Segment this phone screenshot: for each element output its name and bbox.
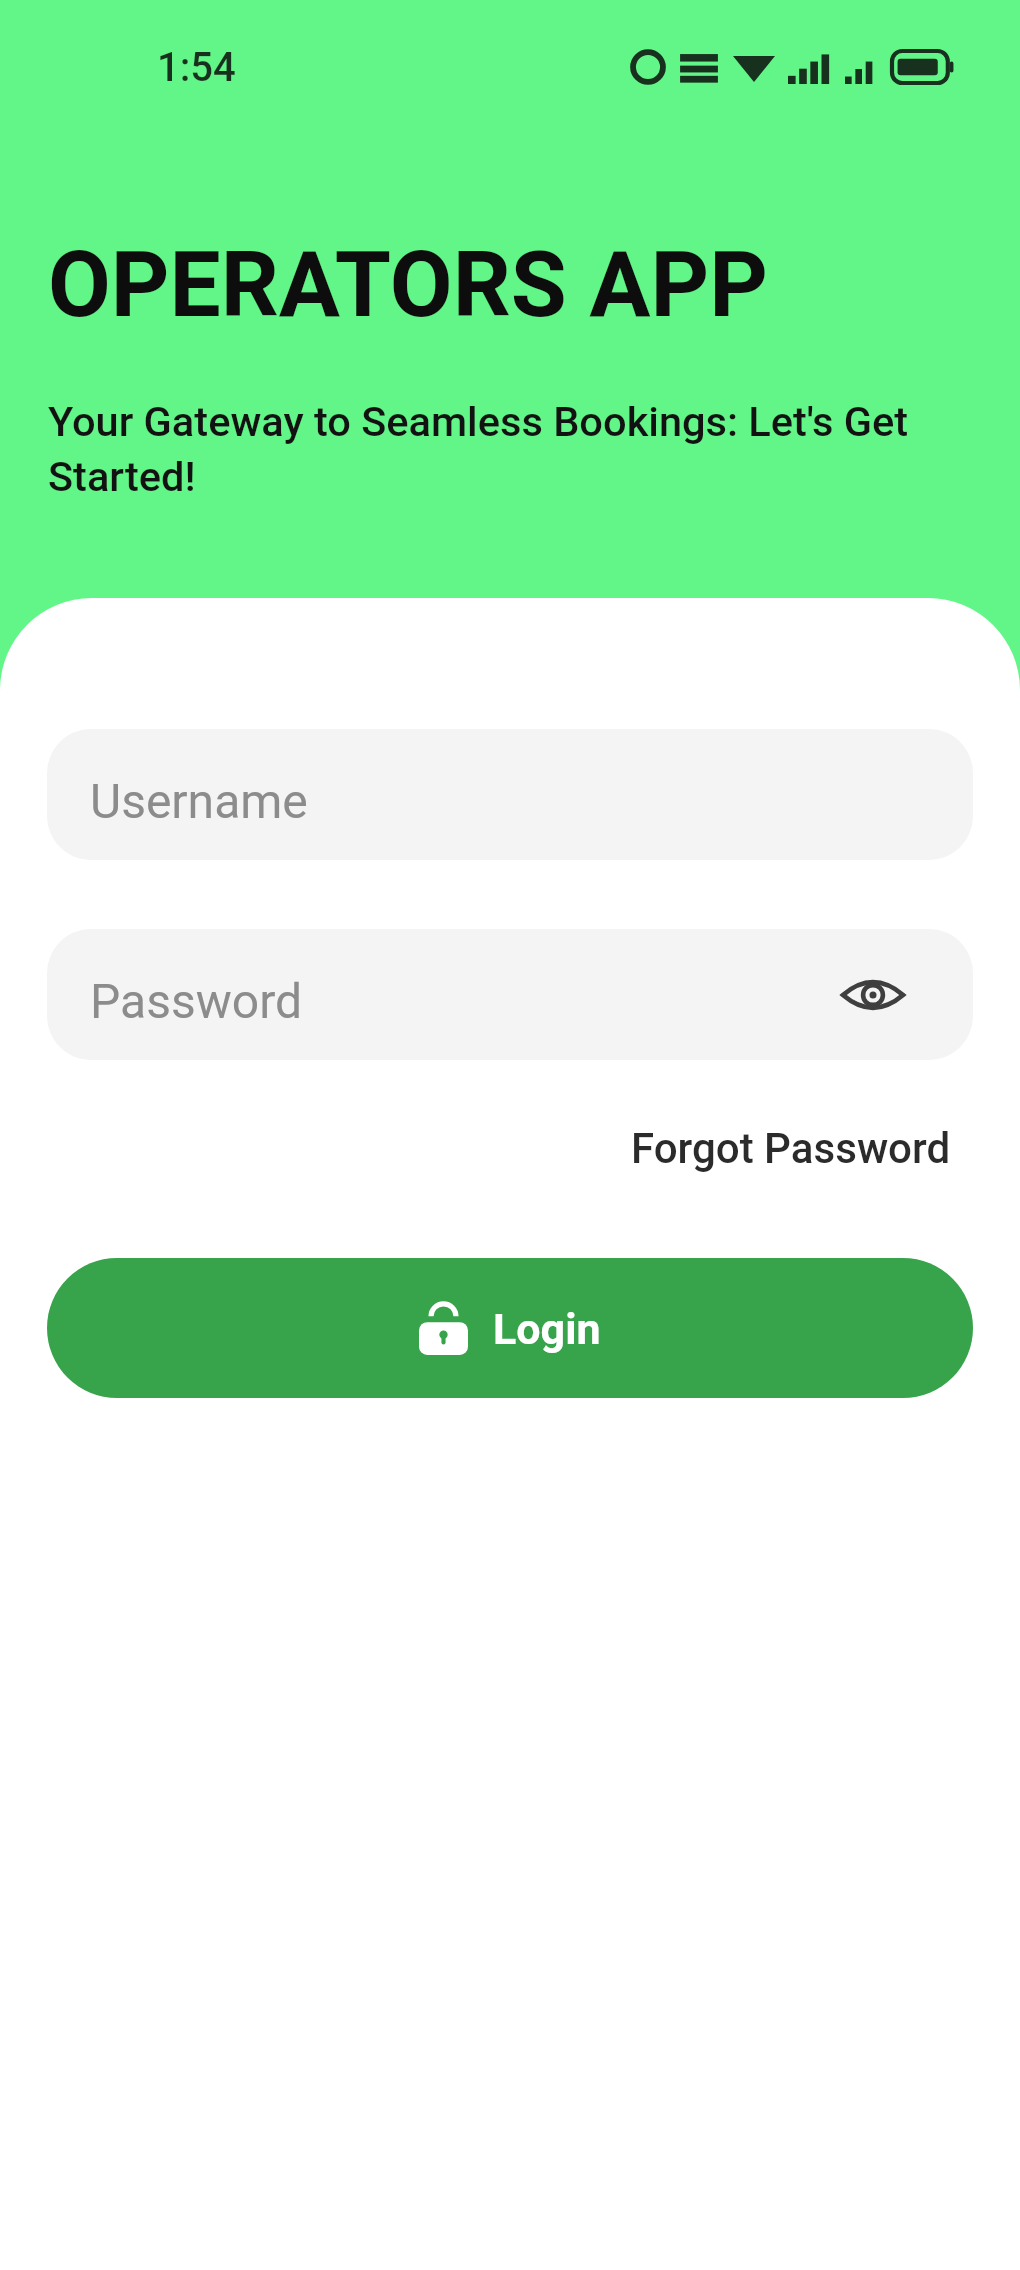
- button[interactable]: Forgot Password: [621, 1118, 973, 1179]
- staticText: 1:54: [157, 44, 236, 91]
- staticText: OPERATORS APP: [48, 232, 769, 339]
- staticText: Password: [90, 973, 303, 1029]
- staticText: Login: [493, 1304, 601, 1354]
- button[interactable]: Username: [47, 729, 973, 860]
- staticText: Your Gateway to Seamless Bookings: Let's…: [48, 397, 972, 501]
- button[interactable]: Login: [47, 1258, 973, 1398]
- staticText: Username: [90, 773, 308, 829]
- staticText: Forgot Password: [631, 1124, 951, 1173]
- button[interactable]: Show password: [841, 963, 905, 1027]
- button[interactable]: Password: [47, 929, 973, 1060]
